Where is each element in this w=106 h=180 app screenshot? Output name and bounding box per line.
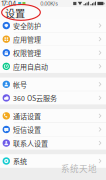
button[interactable]: 权限管理 — [0, 46, 106, 59]
staticText: 17:04 — [1, 0, 16, 7]
staticText: 系统天地 — [61, 162, 97, 174]
button[interactable]: 短信设置 — [0, 123, 106, 136]
button[interactable]: 360 OS云服务 — [0, 91, 106, 104]
staticText: 应用自启动 — [13, 61, 48, 71]
button[interactable]: 安全防护 — [0, 19, 106, 32]
staticText: 设置 — [5, 6, 25, 20]
button[interactable]: 联系人设置 — [0, 136, 106, 150]
staticText: 系统 — [13, 156, 27, 166]
staticText: 联系人设置 — [13, 138, 48, 148]
button[interactable]: 帐号 — [0, 78, 106, 91]
button[interactable]: 应用管理 — [0, 33, 106, 46]
button[interactable]: 应用自启动 — [0, 60, 106, 73]
button[interactable]: 系统 — [0, 154, 106, 168]
staticText: 短信设置 — [13, 124, 41, 134]
staticText: 通话设置 — [13, 111, 41, 121]
staticText: 应用管理 — [13, 34, 41, 44]
staticText: 360 OS云服务 — [13, 93, 57, 103]
staticText: 帐号 — [13, 79, 27, 89]
staticText: 安全防护 — [13, 20, 41, 31]
staticText: 权限管理 — [13, 48, 41, 58]
staticText: 0.00K/s — [40, 0, 58, 7]
button[interactable]: 通话设置 — [0, 109, 106, 122]
